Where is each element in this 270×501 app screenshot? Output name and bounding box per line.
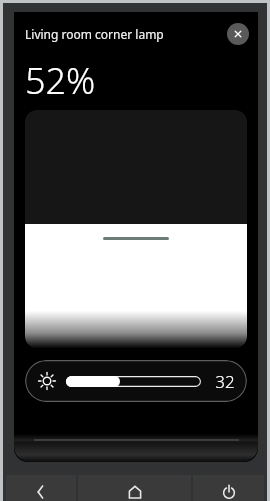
button[interactable]: Power <box>193 475 264 501</box>
button[interactable]: Brightness <box>25 360 247 402</box>
button[interactable]: Living room corner lamp <box>25 26 164 42</box>
button[interactable]: Close <box>227 23 249 45</box>
button[interactable]: Back <box>6 475 76 501</box>
staticText: 52% <box>25 56 96 105</box>
button[interactable]: Home <box>78 475 191 501</box>
other: Brightness <box>38 372 56 390</box>
button[interactable]: Brightness level slider <box>25 110 247 348</box>
staticText: 32 <box>211 370 239 393</box>
